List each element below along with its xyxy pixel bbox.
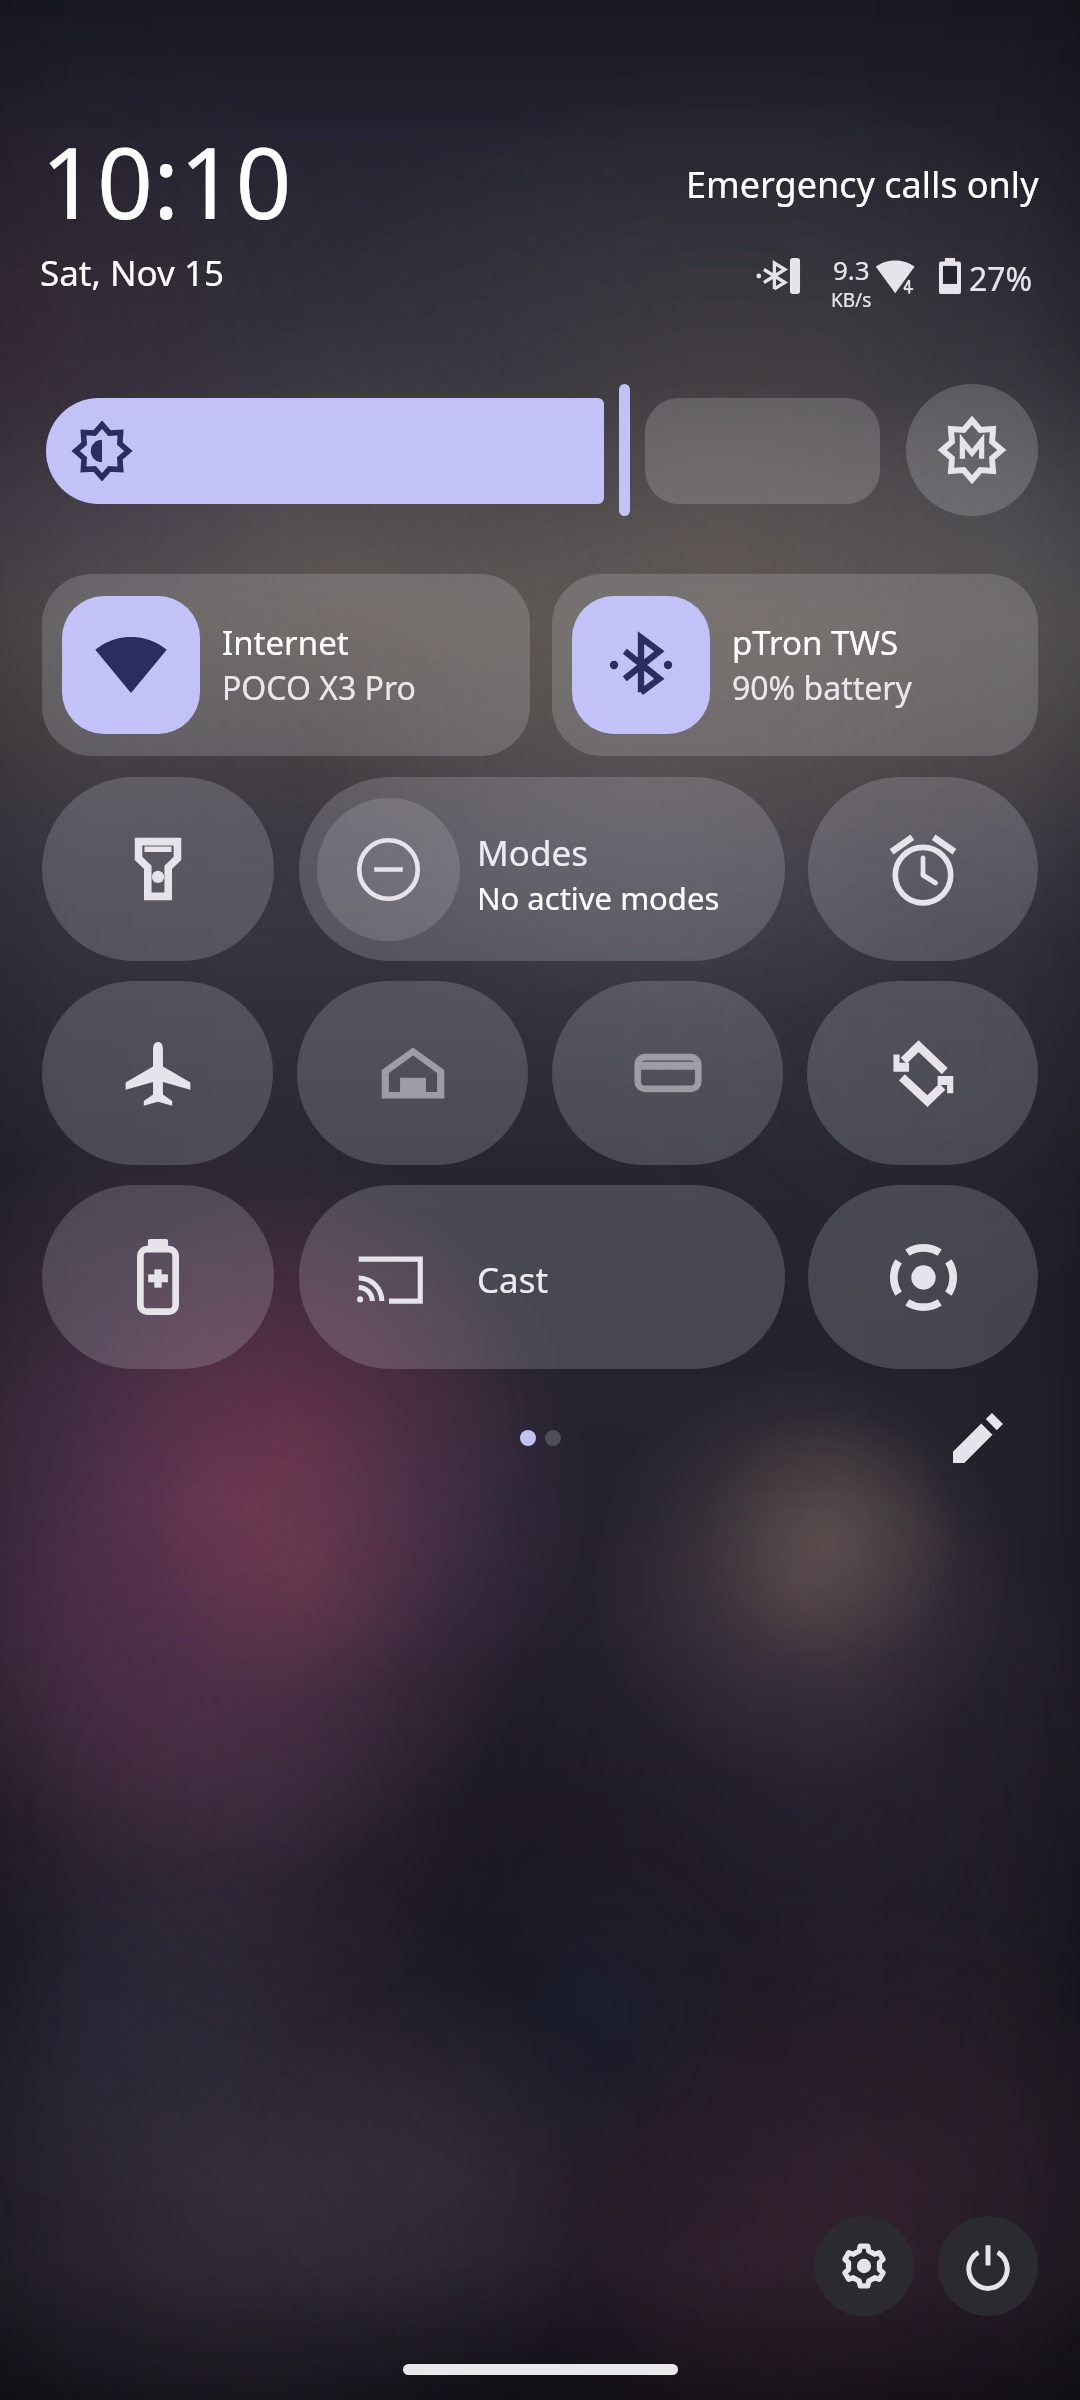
button[interactable]: pTron TWS	[552, 574, 1038, 756]
button[interactable]: Auto rotate	[807, 981, 1038, 1165]
staticText: 9.3	[833, 252, 870, 287]
button[interactable]: Wallet	[552, 981, 783, 1165]
button[interactable]: Edit tiles	[934, 1394, 1022, 1482]
button[interactable]: Mode	[906, 384, 1038, 516]
button[interactable]: Internet	[42, 574, 530, 756]
button[interactable]: Flashlight	[42, 777, 274, 961]
button[interactable]: Screen record	[808, 1185, 1038, 1369]
button[interactable]: Airplane mode	[42, 981, 273, 1165]
button[interactable]: Power	[938, 2216, 1038, 2316]
staticText: 10:10	[41, 114, 292, 247]
staticText: KB/s	[831, 287, 872, 313]
staticText: Internet	[222, 620, 349, 665]
staticText: No active modes	[477, 877, 720, 919]
staticText: 90% battery	[732, 666, 912, 710]
button[interactable]: Brightness	[46, 398, 880, 504]
button[interactable]: Alarm	[808, 777, 1038, 961]
staticText: Emergency calls only	[686, 160, 1039, 209]
staticText: POCO X3 Pro	[222, 666, 416, 710]
button[interactable]: Cast	[299, 1185, 785, 1369]
button[interactable]: Battery saver	[42, 1185, 274, 1369]
staticText: Cast	[477, 1256, 549, 1304]
staticText: 27%	[969, 257, 1033, 301]
button[interactable]: Settings	[814, 2216, 914, 2316]
staticText: pTron TWS	[732, 620, 899, 665]
staticText: Sat, Nov 15	[40, 249, 224, 297]
button[interactable]: Modes	[299, 777, 785, 961]
button[interactable]: Device controls	[297, 981, 528, 1165]
staticText: Modes	[477, 829, 588, 877]
